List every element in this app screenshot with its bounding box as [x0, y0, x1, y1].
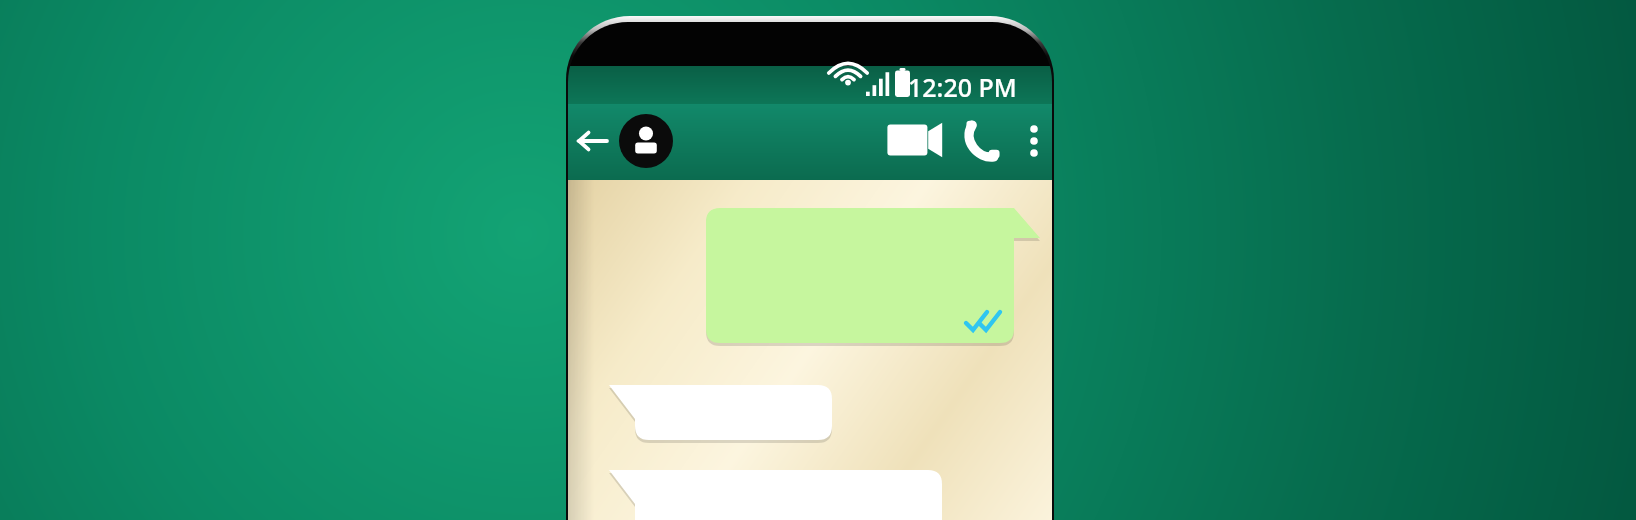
- button[interactable]: Back: [570, 108, 622, 174]
- button[interactable]: More options: [1014, 108, 1056, 174]
- button[interactable]: Video call: [886, 108, 944, 174]
- button[interactable]: Profile photo: [618, 108, 678, 174]
- staticText: 12:20 PM: [908, 70, 1017, 100]
- button[interactable]: Voice call: [954, 108, 1010, 174]
